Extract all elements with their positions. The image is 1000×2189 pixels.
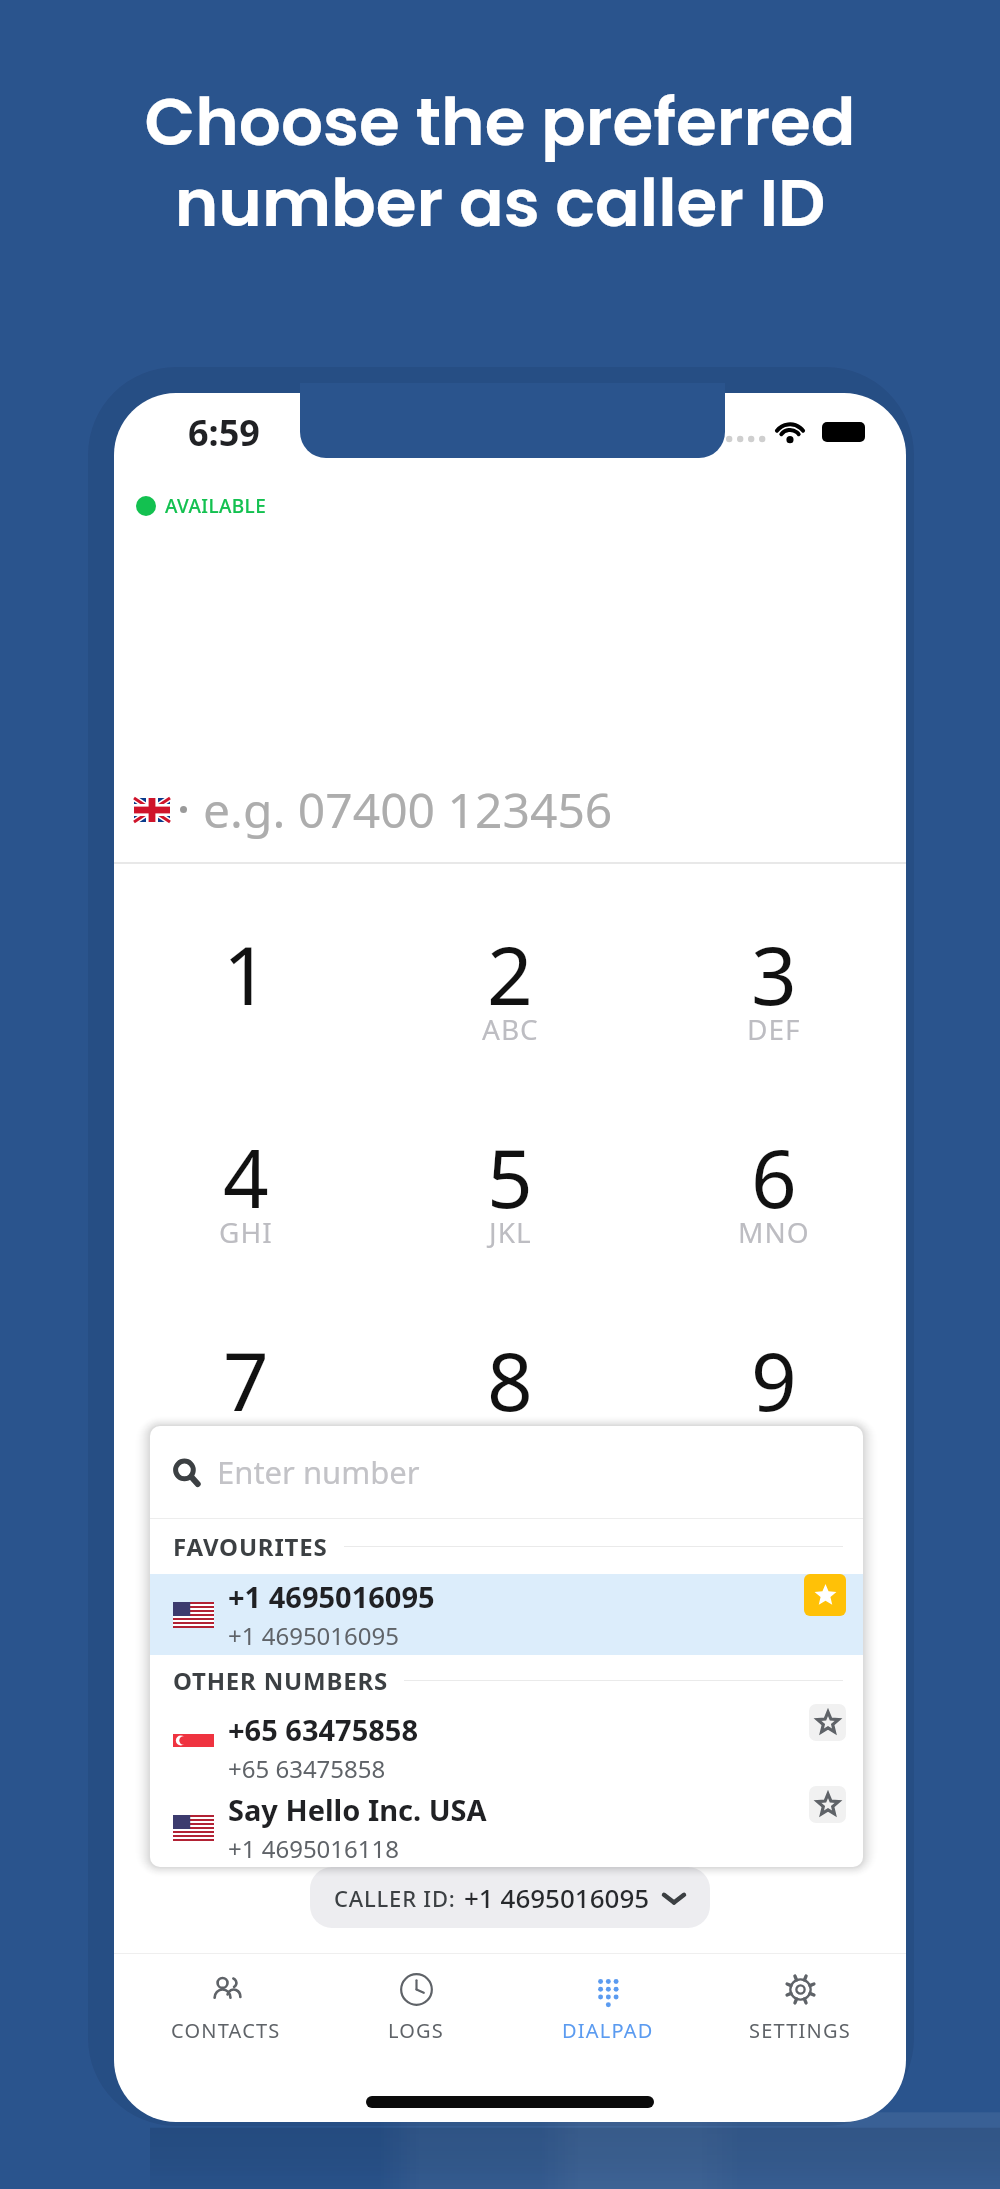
staticText: JKL: [489, 1213, 532, 1251]
staticText: +65 63475858: [228, 1710, 419, 1749]
button[interactable]: DIALPAD: [512, 1954, 704, 2062]
staticText: ABC: [482, 1010, 539, 1048]
button[interactable]: SETTINGS: [704, 1954, 896, 2062]
staticText: +1 4695016095: [228, 1577, 435, 1616]
staticText: MNO: [738, 1213, 810, 1251]
staticText: +1 4695016118: [228, 1832, 399, 1865]
staticText: DIALPAD: [562, 2017, 654, 2044]
staticText: CONTACTS: [171, 2017, 281, 2044]
button[interactable]: CALLER ID:: [310, 1867, 710, 1928]
button[interactable]: 1: [114, 882, 378, 1085]
button[interactable]: 6: [642, 1085, 906, 1288]
button[interactable]: Add to favourites: [809, 1786, 846, 1823]
button[interactable]: Enter number: [150, 1426, 863, 1518]
staticText: LOGS: [388, 2017, 445, 2044]
staticText: 5: [487, 1122, 533, 1231]
button[interactable]: 8: [378, 1288, 642, 1491]
staticText: +65 63475858: [228, 1752, 386, 1785]
staticText: 4: [223, 1122, 269, 1231]
staticText: +1 4695016095: [464, 1880, 650, 1915]
staticText: 6:59: [188, 408, 260, 457]
button[interactable]: Remove from favourites: [804, 1574, 846, 1616]
staticText: DEF: [747, 1010, 801, 1048]
button[interactable]: Say Hello Inc. USA: [150, 1788, 863, 1867]
staticText: TUV: [482, 1416, 538, 1454]
staticText: SETTINGS: [749, 2017, 851, 2044]
button[interactable]: 9: [642, 1288, 906, 1491]
button[interactable]: 4: [114, 1085, 378, 1288]
button[interactable]: Add to favourites: [809, 1704, 846, 1741]
staticText: Say Hello Inc. USA: [228, 1790, 487, 1829]
staticText: Choose the preferred number as caller ID: [0, 76, 1000, 249]
button[interactable]: LOGS: [321, 1954, 512, 2062]
button[interactable]: +1 4695016095: [150, 1574, 863, 1655]
button[interactable]: 5: [378, 1085, 642, 1288]
staticText: 1: [223, 919, 269, 1028]
staticText: Enter number: [217, 1451, 420, 1493]
staticText: PQRS: [208, 1416, 284, 1454]
staticText: +1 4695016095: [228, 1619, 399, 1652]
button[interactable]: 7: [114, 1288, 378, 1491]
button[interactable]: +65 63475858: [150, 1706, 863, 1788]
staticText: GHI: [219, 1213, 273, 1251]
staticText: 8: [487, 1325, 533, 1434]
button[interactable]: 2: [378, 882, 642, 1085]
button[interactable]: CONTACTS: [130, 1954, 321, 2062]
staticText: FAVOURITES: [173, 1530, 328, 1563]
staticText: 9: [751, 1325, 797, 1434]
staticText: CALLER ID:: [334, 1883, 456, 1913]
staticText: AVAILABLE: [165, 493, 267, 519]
staticText: 6: [751, 1122, 797, 1231]
staticText: WXYZ: [735, 1416, 814, 1454]
staticText: 7: [223, 1325, 269, 1434]
staticText: OTHER NUMBERS: [173, 1664, 388, 1697]
staticText: 2: [487, 919, 533, 1028]
staticText: 3: [751, 919, 797, 1028]
staticText: e.g. 07400 123456: [203, 777, 613, 842]
button[interactable]: 3: [642, 882, 906, 1085]
